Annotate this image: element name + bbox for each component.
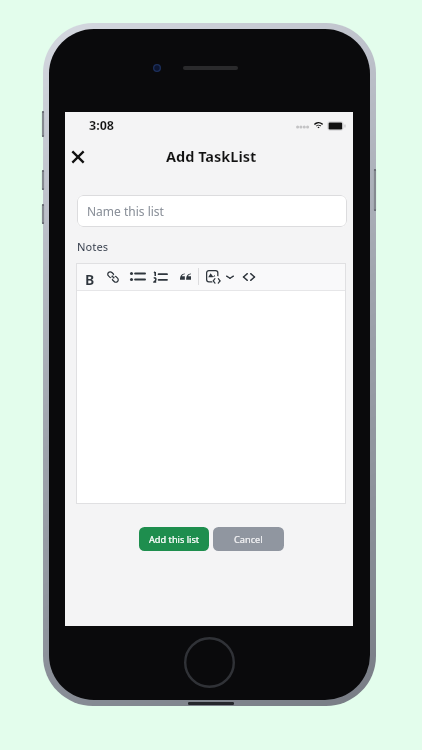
button[interactable]: Add this list: [139, 527, 209, 551]
button[interactable]: Numbered list: [149, 265, 171, 288]
button[interactable]: Quote: [176, 265, 195, 288]
button[interactable]: B: [85, 270, 95, 289]
button[interactable]: Name this list: [77, 195, 347, 227]
button[interactable]: More: [222, 265, 238, 288]
button[interactable]: Insert embed: [202, 265, 224, 288]
staticText: Add TaskList: [166, 146, 257, 166]
staticText: Name this list: [87, 203, 164, 219]
staticText: Notes: [77, 239, 109, 254]
button[interactable]: Bulleted list: [126, 265, 149, 288]
staticText: 3:08: [89, 117, 114, 134]
button[interactable]: Cancel: [213, 527, 284, 551]
button[interactable]: Link: [103, 265, 123, 288]
button[interactable]: Close: [64, 142, 92, 172]
button[interactable]: Code: [239, 265, 259, 288]
staticText: Add this list: [149, 533, 200, 546]
staticText: Cancel: [234, 533, 263, 546]
